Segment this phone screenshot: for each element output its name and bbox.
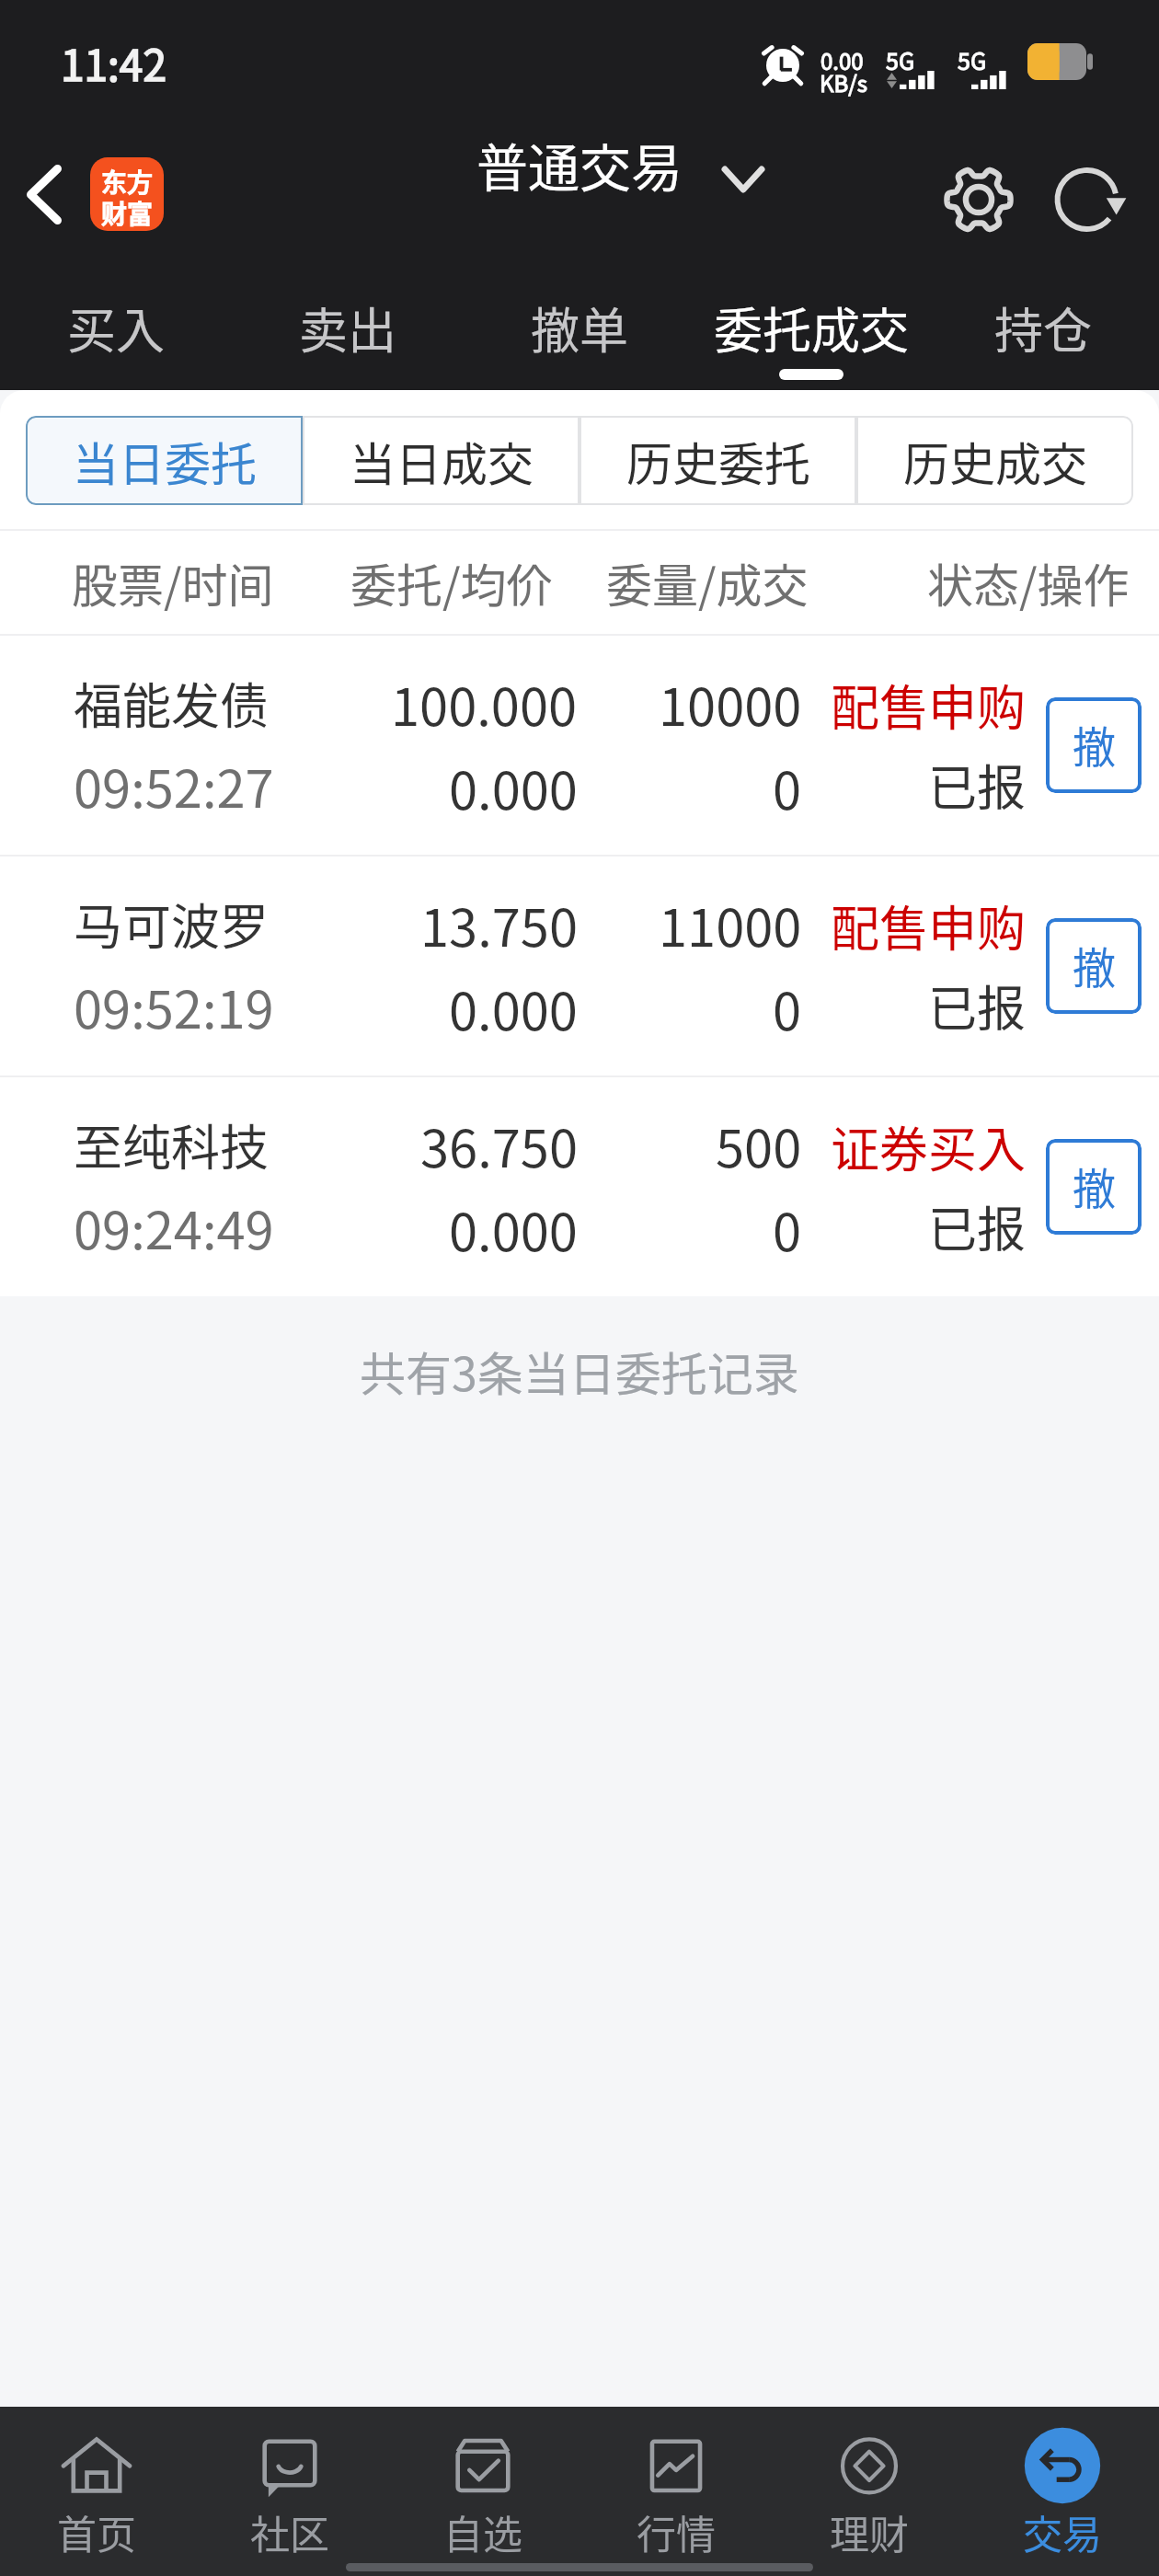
- button[interactable]: 首页: [0, 2407, 193, 2576]
- staticText: 证券买入: [831, 1111, 1026, 1182]
- staticText: 09:52:19: [74, 969, 274, 1043]
- staticText: 普通交易: [476, 127, 683, 201]
- button[interactable]: 历史委托: [579, 416, 856, 505]
- staticText: 社区: [250, 2503, 329, 2560]
- staticText: 100.000: [391, 666, 578, 741]
- staticText: 股票/时间: [72, 549, 274, 615]
- staticText: 委托/均价: [350, 549, 553, 615]
- staticText: 委托成交: [714, 293, 909, 363]
- staticText: 撤单: [531, 293, 628, 363]
- button[interactable]: 买入: [0, 267, 232, 390]
- staticText: 0: [773, 750, 802, 824]
- button[interactable]: 行情: [579, 2407, 773, 2576]
- staticText: 自选: [443, 2503, 522, 2560]
- staticText: 买入: [67, 293, 165, 363]
- button[interactable]: East Money: [90, 157, 164, 231]
- staticText: 09:52:27: [74, 748, 274, 822]
- button[interactable]: 至纯科技: [0, 1077, 1159, 1296]
- staticText: 0.000: [449, 1191, 578, 1266]
- staticText: 东方: [101, 163, 154, 201]
- staticText: 已报: [928, 750, 1026, 821]
- button[interactable]: 委托成交: [695, 267, 927, 390]
- staticText: 13.750: [420, 887, 578, 961]
- staticText: KB/s: [820, 66, 867, 98]
- button[interactable]: 交易: [966, 2407, 1159, 2576]
- button[interactable]: 持仓: [927, 267, 1159, 390]
- staticText: 11:42: [61, 32, 166, 94]
- staticText: 历史委托: [626, 428, 810, 494]
- staticText: 委量/成交: [606, 549, 809, 615]
- staticText: 36.750: [420, 1108, 578, 1182]
- staticText: 福能发债: [74, 668, 269, 739]
- staticText: 5G: [958, 43, 987, 76]
- button[interactable]: 撤单: [464, 267, 695, 390]
- staticText: 行情: [637, 2503, 716, 2560]
- staticText: 理财: [830, 2503, 909, 2560]
- staticText: 当日成交: [350, 428, 534, 494]
- staticText: 09:24:49: [74, 1190, 274, 1264]
- staticText: 交易: [1023, 2503, 1102, 2560]
- staticText: 状态/操作: [927, 549, 1130, 615]
- staticText: 财富: [101, 194, 154, 231]
- staticText: 当日委托: [73, 428, 257, 494]
- staticText: 配售申购: [831, 891, 1026, 961]
- staticText: 首页: [57, 2503, 136, 2560]
- button[interactable]: Refresh: [1034, 144, 1144, 255]
- staticText: 0: [773, 971, 802, 1045]
- staticText: 共有3条当日委托记录: [360, 1338, 799, 1404]
- button[interactable]: Back: [4, 157, 85, 231]
- button[interactable]: 卖出: [232, 267, 464, 390]
- staticText: 0: [773, 1191, 802, 1266]
- staticText: 配售申购: [831, 670, 1026, 741]
- button[interactable]: 历史成交: [856, 416, 1133, 505]
- button[interactable]: 撤单: [1046, 918, 1142, 1014]
- staticText: 至纯科技: [74, 1110, 269, 1180]
- button[interactable]: 当日委托: [26, 416, 303, 505]
- staticText: 5G: [886, 43, 915, 76]
- button[interactable]: 社区: [193, 2407, 386, 2576]
- staticText: 10000: [659, 666, 802, 741]
- button[interactable]: Settings: [924, 144, 1034, 255]
- staticText: 已报: [928, 971, 1026, 1041]
- staticText: 撤: [1073, 933, 1116, 995]
- staticText: 0.000: [449, 750, 578, 824]
- staticText: 0.000: [449, 971, 578, 1045]
- button[interactable]: 自选: [386, 2407, 579, 2576]
- staticText: 撤: [1073, 1154, 1116, 1216]
- button[interactable]: 撤单: [1046, 1139, 1142, 1235]
- staticText: 已报: [928, 1191, 1026, 1262]
- staticText: 马可波罗: [74, 889, 269, 960]
- staticText: 卖出: [299, 293, 396, 363]
- staticText: 撤: [1073, 712, 1116, 775]
- button[interactable]: 福能发债: [0, 636, 1159, 855]
- staticText: 0.00: [820, 44, 864, 76]
- staticText: 500: [716, 1108, 802, 1182]
- button[interactable]: 当日成交: [303, 416, 579, 505]
- button[interactable]: 撤单: [1046, 697, 1142, 793]
- button[interactable]: 理财: [773, 2407, 966, 2576]
- staticText: 持仓: [994, 293, 1092, 363]
- button[interactable]: 马可波罗: [0, 857, 1159, 1075]
- button[interactable]: 普通交易: [476, 127, 765, 201]
- staticText: 历史成交: [903, 428, 1087, 494]
- staticText: 11000: [659, 887, 802, 961]
